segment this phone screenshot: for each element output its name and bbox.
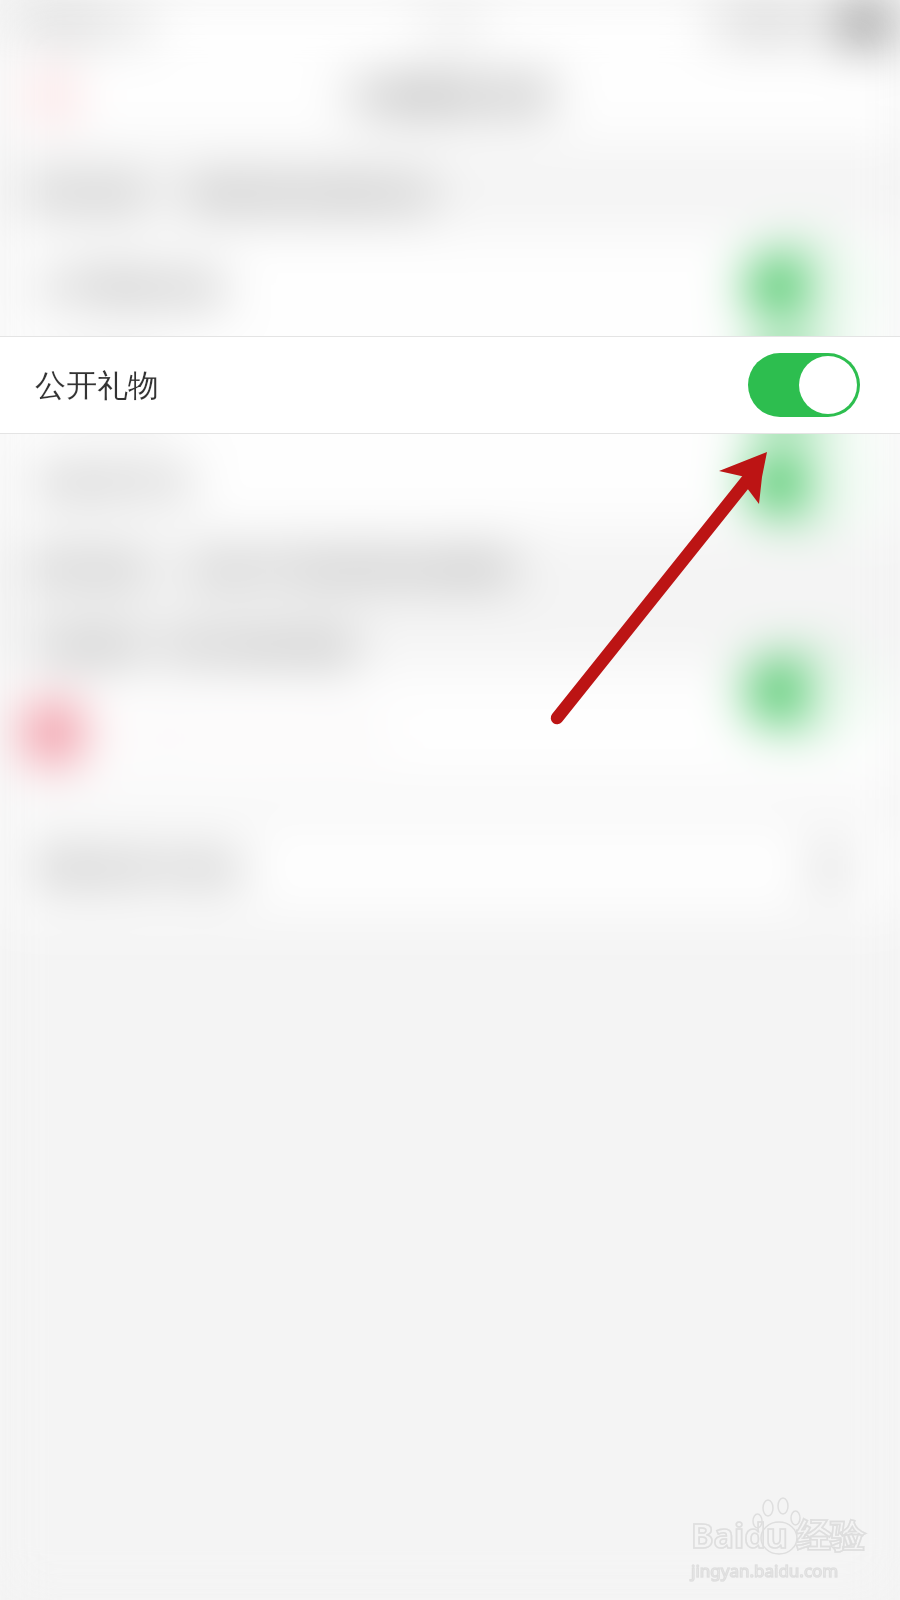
button[interactable]: 公开我的礼物	[0, 234, 900, 340]
button[interactable]: 仅好友可见	[0, 433, 900, 530]
button[interactable]: Toggle	[748, 450, 860, 514]
staticText: 公开我的礼物	[35, 268, 221, 307]
staticText: 仅好友可见	[35, 462, 190, 501]
button[interactable]: 公开礼物	[0, 336, 900, 433]
button[interactable]: 隐私政策与条款	[0, 820, 900, 915]
button[interactable]: 公开礼物	[0, 337, 900, 433]
staticText: 隐私政策与条款	[35, 849, 245, 887]
staticText: 78%	[782, 8, 842, 41]
button[interactable]: Toggle	[748, 353, 860, 417]
button[interactable]: 公开礼物开关	[748, 353, 860, 417]
staticText: 消息通知	[35, 632, 143, 666]
button[interactable]: Toggle	[0, 660, 900, 724]
button[interactable]: Toggle	[748, 660, 860, 724]
staticText: Baidu 经验	[691, 1512, 865, 1558]
staticText: 礼物隐私设置	[350, 74, 554, 117]
staticText: 公开礼物	[35, 366, 159, 405]
staticText: 公开礼物	[35, 365, 159, 404]
button[interactable]: 礼物提醒与推送设置通知	[0, 703, 900, 763]
staticText: jingyan.baidu.com	[691, 1559, 839, 1582]
button[interactable]: Toggle	[748, 255, 860, 319]
